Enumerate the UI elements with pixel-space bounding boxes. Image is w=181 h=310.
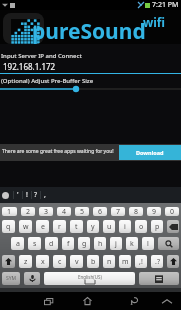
staticText: , [44, 190, 46, 200]
button[interactable]: n [103, 255, 115, 268]
button[interactable]: Back [126, 292, 142, 310]
button[interactable]: Go [139, 272, 179, 285]
button[interactable]: 7 [111, 207, 125, 216]
staticText: u [107, 222, 112, 232]
button[interactable]: z [19, 255, 32, 268]
button[interactable]: o [135, 220, 147, 233]
staticText: 7 [116, 207, 121, 216]
button[interactable]: t [70, 220, 83, 233]
button[interactable]: 1 [2, 207, 17, 216]
button[interactable]: 6 [93, 207, 107, 216]
button[interactable]: Recents [40, 292, 56, 310]
staticText: 1 [7, 207, 12, 216]
staticText: q [6, 222, 11, 232]
button[interactable]: u [103, 220, 115, 233]
button[interactable]: f [62, 237, 74, 250]
staticText: g [82, 239, 87, 249]
button[interactable]: j [110, 237, 122, 250]
staticText: o [139, 222, 144, 232]
button[interactable]: Shift [167, 255, 179, 268]
staticText: ! [26, 190, 28, 200]
staticText: 0 [170, 207, 175, 216]
staticText: i [124, 222, 126, 232]
button[interactable]: w [19, 220, 32, 233]
button[interactable]: Symbols [2, 272, 20, 285]
staticText: Input Server IP and Connect [1, 52, 82, 60]
staticText: 9 [152, 207, 157, 216]
button[interactable]: p [151, 220, 163, 233]
staticText: (Optional) Adjust Pre-Buffer Size [1, 77, 94, 85]
staticText: a [16, 239, 20, 249]
staticText: 3 [44, 207, 49, 216]
button[interactable]: r [53, 220, 66, 233]
button[interactable]: 3 [39, 207, 53, 216]
button[interactable]: y [87, 220, 99, 233]
button[interactable]: k [126, 237, 138, 250]
staticText: 6 [98, 207, 103, 216]
button[interactable]: i [119, 220, 131, 233]
staticText: 4 [62, 207, 67, 216]
button[interactable]: Voice input [24, 272, 40, 285]
button[interactable]: English(US) [44, 272, 135, 285]
staticText: p [155, 222, 160, 232]
staticText: n [107, 257, 112, 267]
button[interactable]: .? [151, 255, 163, 268]
staticText: j [115, 239, 117, 249]
button[interactable]: e [36, 220, 49, 233]
staticText: d [49, 239, 54, 249]
staticText: z [24, 257, 28, 267]
button[interactable]: 4 [57, 207, 71, 216]
staticText: ,! [139, 257, 143, 267]
staticText: ' [17, 190, 19, 200]
staticText: English(US) [78, 274, 102, 280]
staticText: 192.168.1.172 [3, 61, 56, 72]
button[interactable]: h [94, 237, 106, 250]
button[interactable]: 8 [129, 207, 143, 216]
button[interactable]: 9 [147, 207, 161, 216]
button[interactable]: a [11, 237, 24, 250]
staticText: f [67, 239, 70, 249]
button[interactable]: Backspace [167, 220, 179, 233]
staticText: .? [155, 257, 160, 267]
staticText: 5 [80, 207, 85, 216]
staticText: SYM [6, 275, 17, 282]
button[interactable]: v [70, 255, 83, 268]
button[interactable]: s [28, 237, 41, 250]
button[interactable]: ,! [135, 255, 147, 268]
button[interactable]: Hide keyboard [159, 292, 175, 310]
button[interactable]: Shift [2, 255, 15, 268]
staticText: b [91, 257, 96, 267]
button[interactable]: Download [119, 145, 181, 160]
staticText: c [58, 257, 62, 267]
staticText: There are some great free apps waiting f… [2, 148, 114, 155]
staticText: 8 [134, 207, 139, 216]
button[interactable]: x [36, 255, 49, 268]
button[interactable] [0, 84, 181, 94]
button[interactable]: q [2, 220, 15, 233]
staticText: v [75, 257, 79, 267]
staticText: w [23, 222, 29, 232]
staticText: Download [136, 149, 164, 156]
button[interactable]: 0 [165, 207, 179, 216]
button[interactable]: d [45, 237, 58, 250]
button[interactable]: 2 [21, 207, 35, 216]
staticText: k [130, 239, 134, 249]
button[interactable]: b [87, 255, 99, 268]
button[interactable]: Home [79, 292, 95, 310]
button[interactable]: m [119, 255, 131, 268]
staticText: r [58, 222, 61, 232]
staticText: h [98, 239, 103, 249]
button[interactable]: l [142, 237, 154, 250]
staticText: t [75, 222, 78, 232]
staticText: y [91, 222, 95, 232]
staticText: wifi [143, 14, 166, 30]
staticText: 2 [26, 207, 31, 216]
button[interactable]: 5 [75, 207, 89, 216]
staticText: x [41, 257, 45, 267]
button[interactable]: Search [158, 237, 179, 250]
staticText: m [122, 257, 129, 267]
button[interactable]: c [53, 255, 66, 268]
staticText: l [147, 239, 149, 249]
button[interactable]: g [78, 237, 90, 250]
staticText: e [41, 222, 45, 232]
